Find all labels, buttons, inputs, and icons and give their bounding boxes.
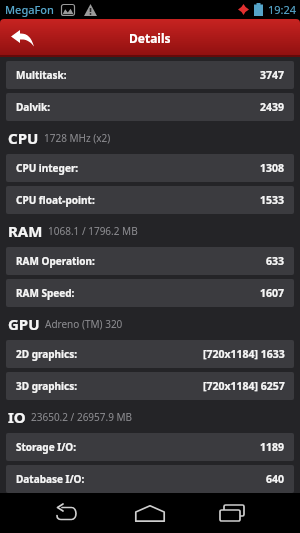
button[interactable] xyxy=(120,493,180,533)
staticText: 19:24 xyxy=(268,2,297,17)
staticText: CPU integer: xyxy=(16,161,79,175)
staticText: 23650.2 / 26957.9 MB xyxy=(31,410,133,424)
staticText: 640 xyxy=(266,472,285,486)
staticText: GPU xyxy=(8,314,40,334)
staticText: RAM Speed: xyxy=(16,286,75,300)
staticText: CPU xyxy=(8,128,39,148)
button[interactable]: RAM Speed: xyxy=(6,279,294,307)
staticText: 2D graphics: xyxy=(16,347,78,361)
button[interactable]: Database I/O: xyxy=(6,465,294,493)
staticText: 1728 MHz (x2) xyxy=(44,131,111,145)
button[interactable]: 2D graphics: xyxy=(6,340,294,368)
button[interactable]: 3D graphics: xyxy=(6,372,294,400)
staticText: 1308 xyxy=(260,161,285,175)
staticText: Multitask: xyxy=(16,68,67,82)
staticText: 3D graphics: xyxy=(16,379,78,393)
button[interactable] xyxy=(202,493,262,533)
button[interactable]: RAM Operation: xyxy=(6,247,294,275)
staticText: 1533 xyxy=(260,193,285,207)
staticText: 1607 xyxy=(260,286,285,300)
button[interactable]: Storage I/O: xyxy=(6,433,294,461)
button[interactable]: CPU float-point: xyxy=(6,186,294,214)
staticText: 1068.1 / 1796.2 MB xyxy=(48,224,138,238)
staticText: IO xyxy=(8,407,26,427)
staticText: 3747 xyxy=(260,68,285,82)
staticText: Storage I/O: xyxy=(16,440,77,454)
button[interactable] xyxy=(0,19,44,57)
staticText: 633 xyxy=(266,254,285,268)
button[interactable]: Multitask: xyxy=(6,61,294,89)
staticText: Adreno (TM) 320 xyxy=(45,317,123,331)
staticText: [720x1184] 1633 xyxy=(203,347,285,361)
button[interactable]: Dalvik: xyxy=(6,93,294,121)
button[interactable] xyxy=(35,493,95,533)
staticText: CPU float-point: xyxy=(16,193,95,207)
staticText: 1189 xyxy=(260,440,285,454)
staticText: RAM xyxy=(8,221,43,241)
staticText: Dalvik: xyxy=(16,100,50,114)
staticText: Details xyxy=(129,30,171,46)
staticText: [720x1184] 6257 xyxy=(203,379,285,393)
staticText: Database I/O: xyxy=(16,472,85,486)
button[interactable]: CPU integer: xyxy=(6,154,294,182)
staticText: RAM Operation: xyxy=(16,254,95,268)
staticText: 2439 xyxy=(260,100,285,114)
staticText: MegaFon xyxy=(5,2,54,17)
